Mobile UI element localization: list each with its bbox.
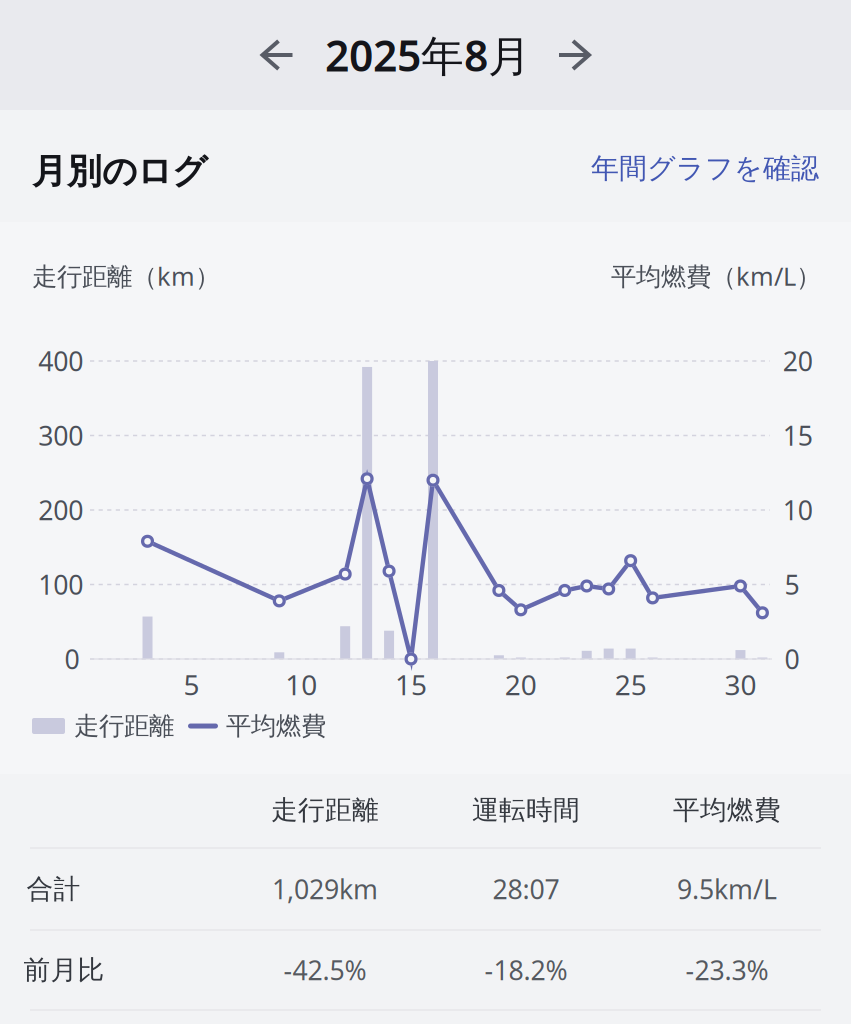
staticText: -18.2%: [484, 952, 567, 988]
staticText: 25: [615, 666, 647, 703]
staticText: 走行距離（km）: [32, 259, 220, 293]
staticText: 400: [38, 343, 83, 379]
staticText: 0: [64, 641, 79, 677]
staticText: 5: [785, 567, 800, 602]
button[interactable]: 次の月: [543, 23, 605, 87]
staticText: -42.5%: [283, 952, 366, 988]
staticText: 運転時間: [472, 794, 580, 826]
staticText: 100: [38, 567, 83, 602]
staticText: 15: [783, 418, 813, 453]
button[interactable]: 2025年8月: [311, 17, 545, 93]
staticText: 前月比: [23, 954, 104, 986]
button[interactable]: 前の月: [246, 23, 308, 87]
staticText: 走行距離: [271, 794, 379, 826]
staticText: 0: [785, 641, 800, 677]
staticText: 5: [183, 666, 199, 703]
staticText: 28:07: [492, 871, 559, 907]
staticText: 10: [783, 492, 813, 528]
staticText: -23.3%: [685, 952, 768, 988]
staticText: 平均燃費: [673, 794, 781, 826]
button[interactable]: 年間グラフを確認: [591, 146, 819, 186]
staticText: 9.5km/L: [677, 871, 777, 907]
staticText: 20: [505, 666, 537, 703]
staticText: 300: [38, 418, 83, 453]
staticText: 合計: [27, 873, 81, 905]
staticText: 走行距離: [74, 710, 174, 741]
staticText: 1,029km: [272, 871, 378, 907]
staticText: 月別のログ: [32, 150, 207, 193]
staticText: 15: [395, 666, 427, 703]
staticText: 10: [285, 666, 317, 703]
staticText: 平均燃費: [226, 710, 326, 741]
staticText: 平均燃費（km/L）: [611, 259, 821, 293]
staticText: 20: [783, 343, 813, 379]
staticText: 30: [724, 666, 756, 703]
staticText: 年間グラフを確認: [591, 151, 819, 186]
staticText: 2025年8月: [325, 27, 531, 83]
staticText: 200: [38, 492, 83, 528]
